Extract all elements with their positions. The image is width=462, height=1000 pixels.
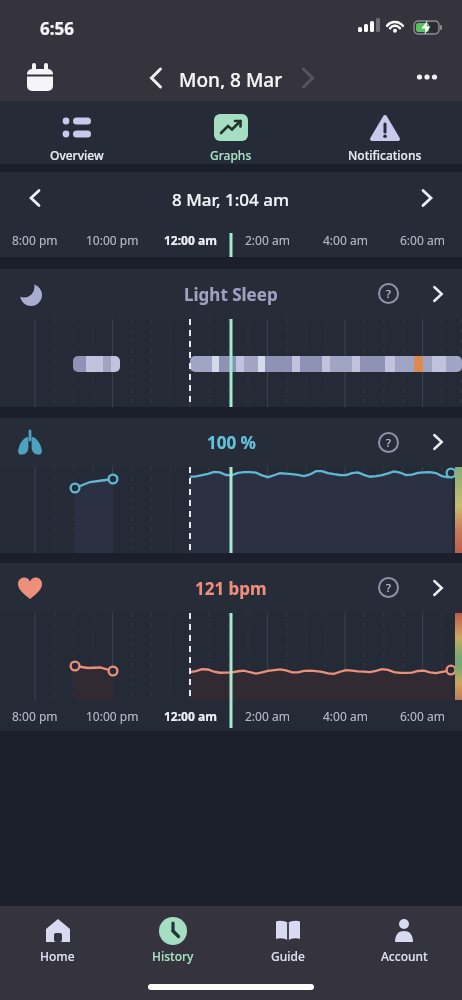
staticText: Guide: [271, 948, 305, 964]
staticText: 121 bpm: [195, 577, 267, 599]
button[interactable]: Overview: [0, 101, 154, 164]
staticText: 6:00 am: [400, 708, 445, 724]
button[interactable]: Light Sleep: [0, 269, 462, 319]
staticText: 10:00 pm: [86, 708, 139, 724]
staticText: 4:00 am: [323, 708, 368, 724]
staticText: 2:00 am: [245, 708, 290, 724]
button[interactable]: [412, 184, 442, 212]
staticText: Overview: [50, 147, 104, 163]
staticText: Home: [40, 948, 75, 964]
button[interactable]: Account: [346, 906, 462, 1000]
staticText: 4:00 am: [323, 232, 368, 248]
staticText: 12:00 am: [164, 708, 217, 724]
button[interactable]: Home: [0, 906, 115, 1000]
button[interactable]: [409, 62, 445, 94]
staticText: ?: [386, 580, 391, 595]
button[interactable]: [426, 429, 450, 455]
staticText: 10:00 pm: [86, 232, 139, 248]
staticText: 6:00 am: [400, 232, 445, 248]
staticText: ?: [386, 435, 391, 450]
staticText: 8:00 pm: [12, 232, 58, 248]
staticText: Account: [381, 948, 428, 964]
button[interactable]: ?: [378, 432, 399, 453]
button[interactable]: [20, 184, 50, 212]
button[interactable]: History: [115, 906, 230, 1000]
staticText: 6:56: [40, 17, 74, 39]
staticText: Notifications: [348, 147, 422, 163]
staticText: 100 %: [207, 431, 256, 453]
button[interactable]: Guide: [230, 906, 346, 1000]
staticText: ?: [386, 286, 391, 301]
staticText: 12:00 am: [164, 232, 217, 248]
staticText: Light Sleep: [184, 283, 278, 305]
staticText: History: [152, 948, 194, 964]
button[interactable]: 121 bpm: [0, 563, 462, 613]
button[interactable]: 100 %: [0, 418, 462, 467]
button[interactable]: [294, 62, 322, 90]
button[interactable]: [426, 281, 450, 307]
button[interactable]: ?: [378, 577, 399, 598]
button[interactable]: [22, 60, 58, 96]
staticText: Mon, 8 Mar: [179, 67, 283, 89]
button[interactable]: Notifications: [308, 101, 462, 164]
button[interactable]: [426, 575, 450, 601]
staticText: Graphs: [210, 147, 252, 163]
staticText: 8:00 pm: [12, 708, 58, 724]
staticText: 8 Mar, 1:04 am: [172, 188, 290, 210]
staticText: 2:00 am: [245, 232, 290, 248]
button[interactable]: ?: [378, 283, 399, 304]
button[interactable]: Graphs: [154, 101, 308, 164]
button[interactable]: [142, 62, 170, 90]
